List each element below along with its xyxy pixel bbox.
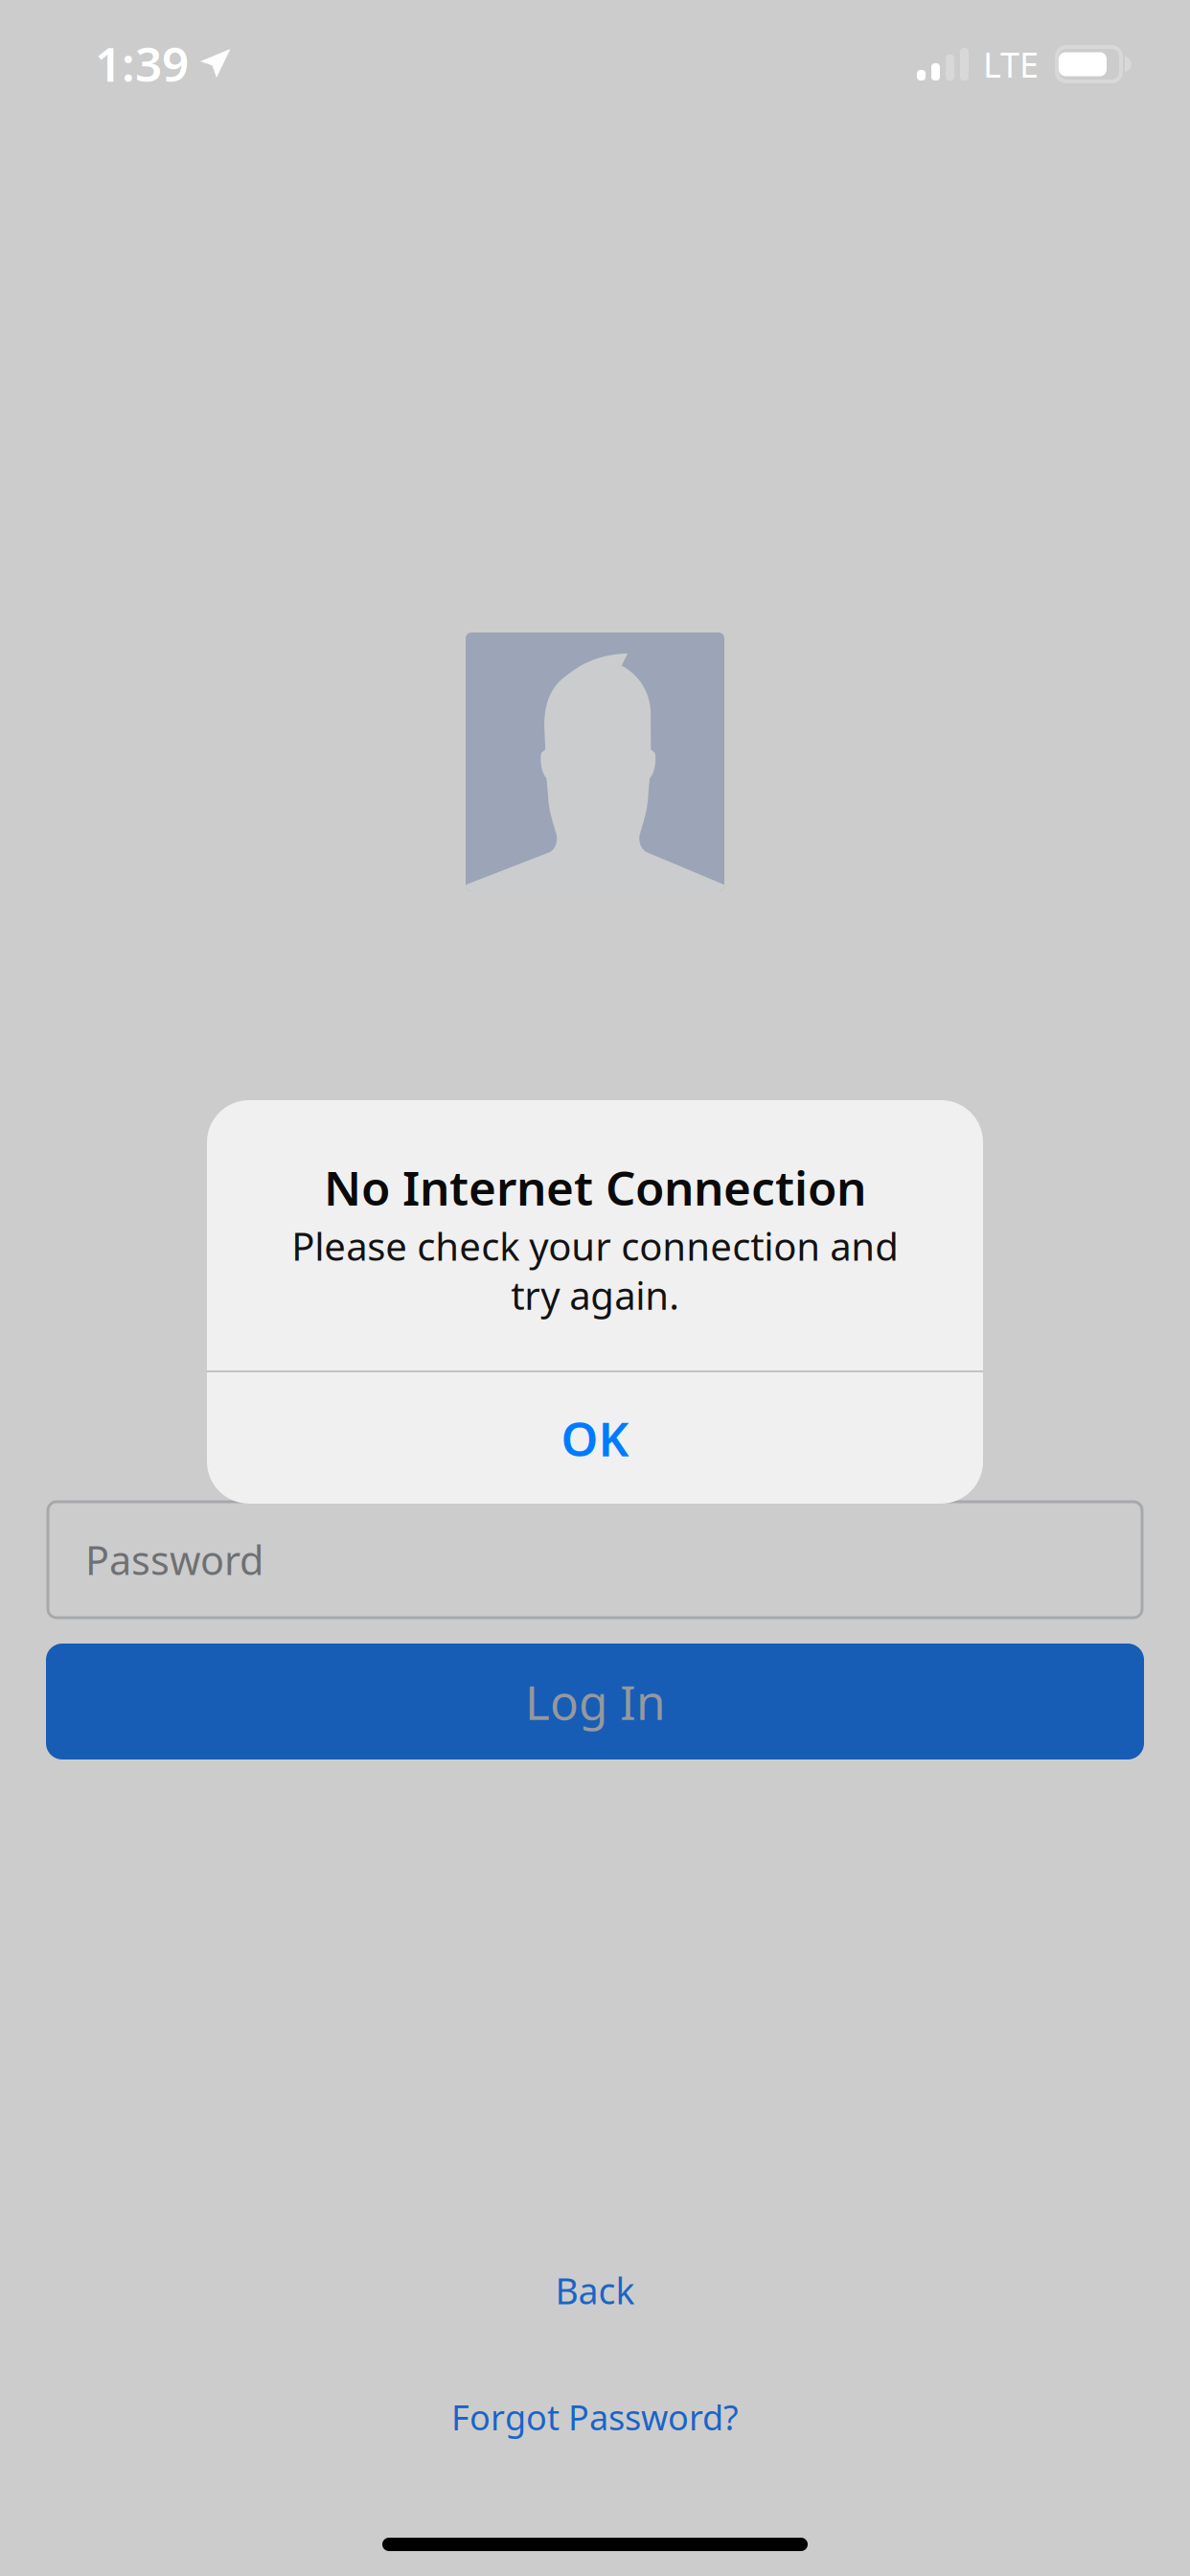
- staticText: No Internet Connection: [324, 1156, 866, 1219]
- button[interactable]: Log In: [46, 1644, 1144, 1759]
- button[interactable]: Password: [48, 1502, 1142, 1618]
- button[interactable]: OK: [207, 1372, 983, 1504]
- staticText: Password: [85, 1533, 263, 1586]
- staticText: Please check your connection and try aga…: [291, 1220, 899, 1320]
- staticText: Forgot Password?: [451, 2394, 739, 2440]
- staticText: Log In: [525, 1670, 665, 1733]
- staticText: OK: [561, 1407, 629, 1469]
- staticText: 1:39: [95, 32, 189, 95]
- staticText: Back: [555, 2267, 635, 2314]
- button[interactable]: Back: [451, 2244, 739, 2336]
- button[interactable]: Forgot Password?: [394, 2371, 796, 2463]
- staticText: LTE: [983, 41, 1039, 87]
